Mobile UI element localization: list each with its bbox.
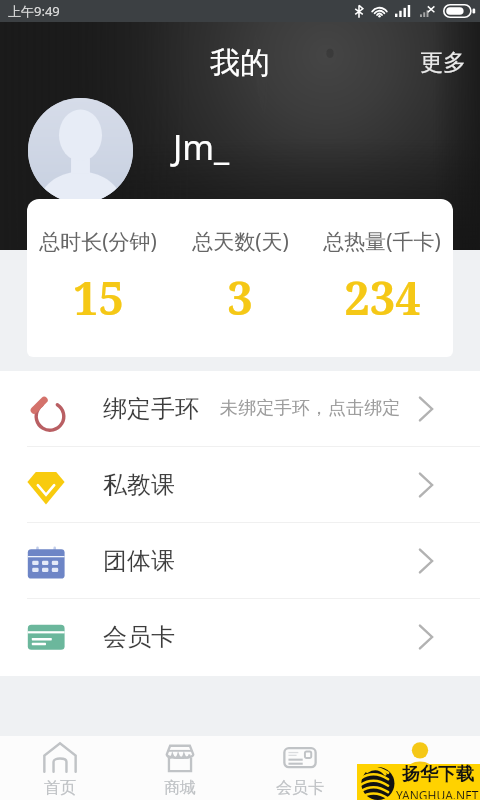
staticText: 234 [344,267,421,328]
staticText: 团体课 [103,546,175,576]
staticText: 我的 [404,778,436,798]
staticText: 3 [227,267,253,328]
staticText: 首页 [44,778,76,798]
staticText: YANGHUA.NET [396,787,479,799]
staticText: 我的 [210,44,270,82]
button[interactable]: 首页 [0,736,120,798]
button[interactable]: 我的 [360,736,480,798]
button[interactable]: 会员卡 [0,599,480,674]
staticText: 会员卡 [103,622,175,652]
staticText: 15 [73,267,124,328]
button[interactable]: 会员卡 [240,736,360,798]
staticText: 总热量(千卡) [323,227,441,256]
button[interactable]: 更多 [406,42,480,83]
staticText: 更多 [420,48,466,77]
staticText: 私教课 [103,470,175,500]
button[interactable]: 私教课 [0,447,480,522]
staticText: 上午9:49 [8,2,60,20]
staticText: 扬华下载 [402,763,474,786]
button[interactable]: 商城 [120,736,240,798]
staticText: Jm_ [173,124,230,170]
staticText: 会员卡 [276,778,324,798]
staticText: 绑定手环 [103,394,199,424]
staticText: 总天数(天) [192,227,289,256]
staticText: 总时长(分钟) [39,227,157,256]
staticText: 商城 [164,778,196,798]
button[interactable]: Avatar [28,98,133,203]
staticText: 未绑定手环，点击绑定 [220,397,400,420]
button[interactable]: 总时长(分钟) [27,199,453,357]
button[interactable]: 绑定手环 [0,371,480,446]
button[interactable]: 团体课 [0,523,480,598]
